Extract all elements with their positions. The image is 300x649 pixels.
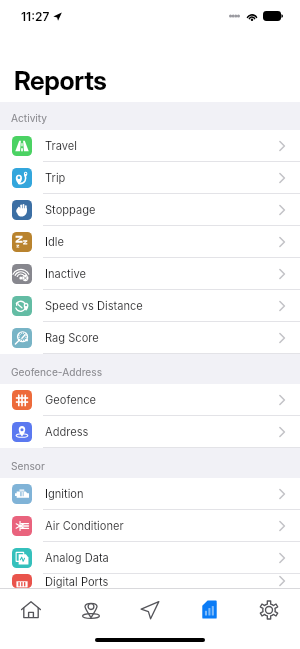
staticText: Rag Score xyxy=(45,331,99,344)
button[interactable]: Analog Data xyxy=(0,542,300,574)
button[interactable]: Trip xyxy=(0,162,300,194)
staticText: Inactive xyxy=(45,267,86,280)
button[interactable]: Speed vs Distance xyxy=(0,290,300,322)
button[interactable]: Digital Ports xyxy=(0,574,300,588)
button[interactable]: Settings xyxy=(241,600,297,634)
button[interactable]: Air Conditioner xyxy=(0,510,300,542)
staticText: Sensor xyxy=(11,460,45,472)
staticText: Trip xyxy=(45,171,66,184)
staticText: Analog Data xyxy=(45,551,109,564)
staticText: Idle xyxy=(45,235,64,248)
staticText: 11:27 xyxy=(21,9,50,24)
button[interactable]: Rag Score xyxy=(0,322,300,354)
button[interactable]: Travel xyxy=(0,130,300,162)
staticText: Address xyxy=(45,425,89,438)
button[interactable]: Home xyxy=(3,600,59,634)
staticText: Speed vs Distance xyxy=(45,299,143,312)
staticText: Geofence-Address xyxy=(11,366,103,378)
staticText: Stoppage xyxy=(45,203,96,216)
button[interactable]: Navigate xyxy=(122,600,178,634)
button[interactable]: Ignition xyxy=(0,478,300,510)
staticText: Ignition xyxy=(45,487,84,500)
button[interactable]: Idle xyxy=(0,226,300,258)
button[interactable]: Inactive xyxy=(0,258,300,290)
button[interactable]: Reports xyxy=(181,600,237,634)
staticText: Geofence xyxy=(45,393,97,406)
button[interactable]: Stoppage xyxy=(0,194,300,226)
button[interactable]: Address xyxy=(0,416,300,448)
staticText: Reports xyxy=(14,65,107,96)
button[interactable]: Places xyxy=(63,600,119,634)
staticText: Digital Ports xyxy=(45,575,109,588)
button[interactable]: Geofence xyxy=(0,384,300,416)
staticText: Activity xyxy=(11,112,48,124)
staticText: Travel xyxy=(45,139,77,152)
staticText: Air Conditioner xyxy=(45,519,124,532)
